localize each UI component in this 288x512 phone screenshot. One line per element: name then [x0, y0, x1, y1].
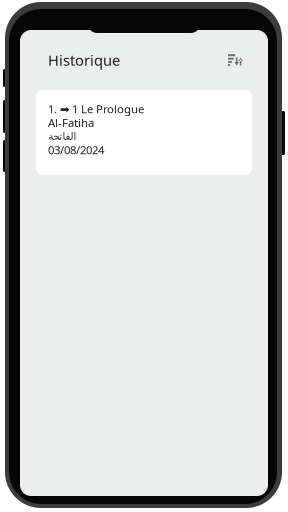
staticText: Historique [48, 50, 120, 70]
staticText: الفاتحة [48, 130, 76, 142]
staticText: Al-Fatiha [48, 115, 94, 130]
staticText: 1. ➡ 1 Le Prologue [48, 101, 144, 116]
staticText: 03/08/2024 [48, 142, 104, 158]
button[interactable]: Sort [228, 54, 243, 66]
button[interactable]: 1. ➡ 1 Le Prologue [36, 90, 252, 175]
